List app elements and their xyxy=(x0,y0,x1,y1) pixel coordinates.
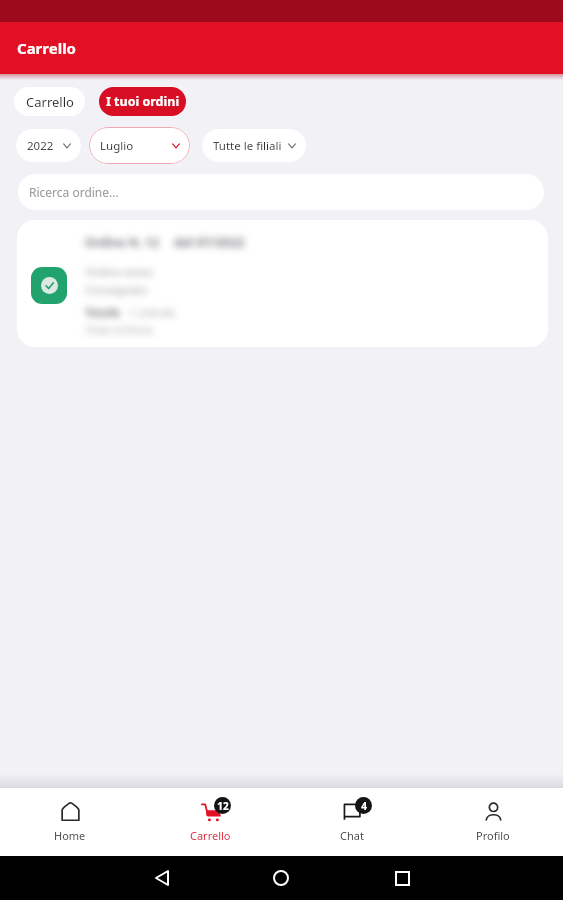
staticText: Filiale di Roma xyxy=(85,323,153,337)
staticText: Home xyxy=(54,828,86,843)
staticText: Chat xyxy=(340,828,364,843)
staticText: Ordine evaso xyxy=(85,264,154,279)
staticText: del 07/2022 xyxy=(174,234,248,251)
button[interactable]: Profilo xyxy=(422,788,563,856)
button[interactable]: Home xyxy=(0,788,140,856)
staticText: Ordine N. 12 xyxy=(85,234,159,250)
button[interactable]: Luglio xyxy=(89,127,190,164)
staticText: 2022 xyxy=(27,138,54,154)
button[interactable]: Back xyxy=(142,858,182,898)
button[interactable]: Ricerca ordine... xyxy=(18,174,544,210)
staticText: 12 xyxy=(217,799,229,813)
staticText: Carrello xyxy=(17,38,76,58)
staticText: Luglio xyxy=(100,138,134,154)
button[interactable]: 4 xyxy=(281,788,422,856)
button[interactable]: 12 xyxy=(140,788,281,856)
button[interactable]: Recent apps xyxy=(382,858,422,898)
button[interactable]: Ordine N. 12 xyxy=(17,220,548,347)
button[interactable]: Carrello xyxy=(14,87,85,116)
staticText: Totale xyxy=(85,305,121,321)
button[interactable]: 2022 xyxy=(16,129,81,162)
staticText: Carrello xyxy=(190,828,231,843)
staticText: Tutte le filiali xyxy=(213,138,282,154)
staticText: 1.234,00 xyxy=(129,305,175,321)
staticText: I tuoi ordini xyxy=(106,93,180,110)
staticText: Consegnato xyxy=(85,282,148,297)
button[interactable]: Tutte le filiali xyxy=(202,129,306,162)
staticText: Profilo xyxy=(476,828,510,843)
button[interactable]: Home xyxy=(261,858,301,898)
staticText: Ricerca ordine... xyxy=(29,184,119,200)
staticText: 4 xyxy=(361,799,367,813)
staticText: Carrello xyxy=(26,93,74,111)
button[interactable]: I tuoi ordini xyxy=(99,87,186,116)
